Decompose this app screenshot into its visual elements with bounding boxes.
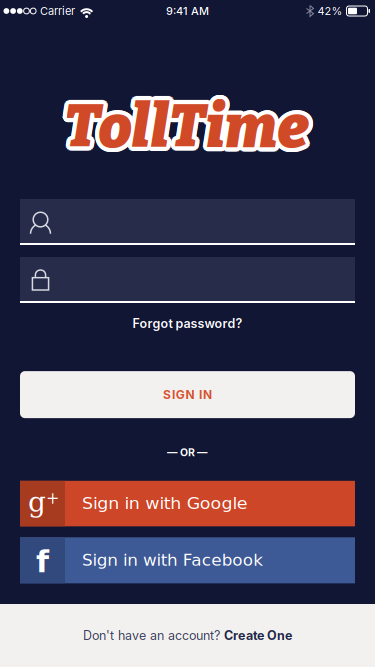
staticText: TollTime xyxy=(67,90,312,161)
staticText: TollTime xyxy=(60,90,305,161)
staticText: TollTime xyxy=(63,92,308,162)
staticText: Create One xyxy=(224,628,292,643)
staticText: 42% xyxy=(317,4,342,18)
staticText: TollTime xyxy=(60,95,305,165)
staticText: — OR — xyxy=(167,446,208,459)
staticText: Sign in with Facebook xyxy=(82,551,254,570)
button[interactable]: g+ xyxy=(20,481,355,526)
staticText: SIGN IN xyxy=(163,387,212,402)
staticText: TollTime xyxy=(68,92,313,162)
staticText: TollTime xyxy=(59,92,304,162)
staticText: Sign in with Google xyxy=(82,494,234,513)
staticText: TollTime xyxy=(60,93,305,164)
staticText: TollTime xyxy=(60,89,305,159)
staticText: TollTime xyxy=(66,89,311,159)
staticText: TollTime xyxy=(62,95,307,166)
staticText: 9:41 AM xyxy=(166,4,209,18)
staticText: TollTime xyxy=(65,95,310,166)
staticText: TollTime xyxy=(67,93,312,164)
staticText: g+ xyxy=(28,486,59,518)
button[interactable]: Don't have an account? xyxy=(0,604,375,667)
staticText: TollTime xyxy=(62,88,307,158)
staticText: Don't have an account? xyxy=(83,628,220,643)
staticText: TollTime xyxy=(63,96,308,167)
button[interactable]: SIGN IN xyxy=(20,371,355,418)
staticText: f xyxy=(36,544,49,579)
button[interactable]: f xyxy=(20,537,355,583)
button[interactable]: Forgot password? xyxy=(132,316,242,331)
staticText: Forgot password? xyxy=(132,316,242,331)
staticText: TollTime xyxy=(65,88,310,158)
staticText: Carrier xyxy=(40,4,75,18)
staticText: TollTime xyxy=(63,87,308,158)
staticText: TollTime xyxy=(66,95,311,165)
